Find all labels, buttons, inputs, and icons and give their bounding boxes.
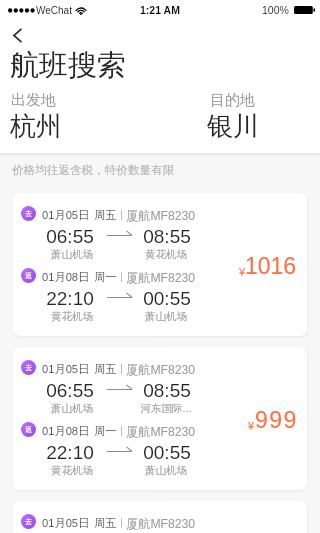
staticText: 出发地 (11, 91, 56, 110)
staticText: WeChat (36, 5, 72, 16)
staticText: 周一 (94, 424, 117, 438)
staticText: 厦航MF8230 (126, 362, 196, 376)
staticText: 返 (25, 425, 33, 434)
staticText: 返 (25, 271, 33, 280)
staticText: 08:55 (142, 380, 192, 401)
staticText: 周五 (94, 516, 117, 530)
staticText: 周一 (94, 270, 117, 284)
staticText: 100% (262, 4, 289, 16)
staticText: 河东国际... (138, 402, 194, 415)
button[interactable]: Back (3, 22, 31, 48)
staticText: ¥ (248, 420, 255, 432)
staticText: 目的地 (210, 91, 255, 110)
staticText: 周五 (94, 208, 117, 222)
staticText: 去 (25, 363, 33, 372)
button[interactable]: 去 (13, 501, 307, 533)
staticText: 去 (25, 209, 33, 218)
staticText: 黄花机场 (138, 248, 194, 261)
staticText: 1:21 AM (140, 4, 180, 16)
staticText: 厦航MF8230 (126, 270, 196, 284)
staticText: 黄花机场 (47, 464, 97, 477)
staticText: 08:55 (142, 226, 192, 247)
staticText: 22:10 (45, 442, 95, 463)
staticText: 银川 (207, 110, 259, 143)
staticText: 杭州 (10, 110, 62, 143)
staticText: 萧山机场 (47, 402, 97, 415)
staticText: 01月08日 (42, 424, 90, 438)
staticText: 01月05日 (42, 362, 90, 376)
staticText: 01月05日 (42, 516, 90, 530)
staticText: 06:55 (45, 226, 95, 247)
staticText: 黄花机场 (47, 310, 97, 323)
staticText: 06:55 (45, 380, 95, 401)
staticText: 萧山机场 (138, 464, 194, 477)
staticText: 999 (255, 407, 298, 433)
staticText: ¥ (239, 266, 246, 278)
staticText: 00:55 (142, 288, 192, 309)
staticText: 01月05日 (42, 208, 90, 222)
staticText: 价格均往返含税，特价数量有限 (12, 163, 175, 178)
staticText: 萧山机场 (47, 248, 97, 261)
button[interactable]: 去 (13, 347, 307, 490)
staticText: 厦航MF8230 (126, 424, 196, 438)
staticText: 01月08日 (42, 270, 90, 284)
staticText: 周五 (94, 362, 117, 376)
button[interactable]: 去 (13, 193, 307, 336)
staticText: 萧山机场 (138, 310, 194, 323)
staticText: 航班搜索 (10, 47, 126, 84)
staticText: 厦航MF8230 (126, 208, 196, 222)
staticText: 去 (25, 517, 33, 526)
staticText: 22:10 (45, 288, 95, 309)
staticText: 厦航MF8230 (126, 516, 196, 530)
staticText: 1016 (245, 253, 297, 279)
staticText: 00:55 (142, 442, 192, 463)
